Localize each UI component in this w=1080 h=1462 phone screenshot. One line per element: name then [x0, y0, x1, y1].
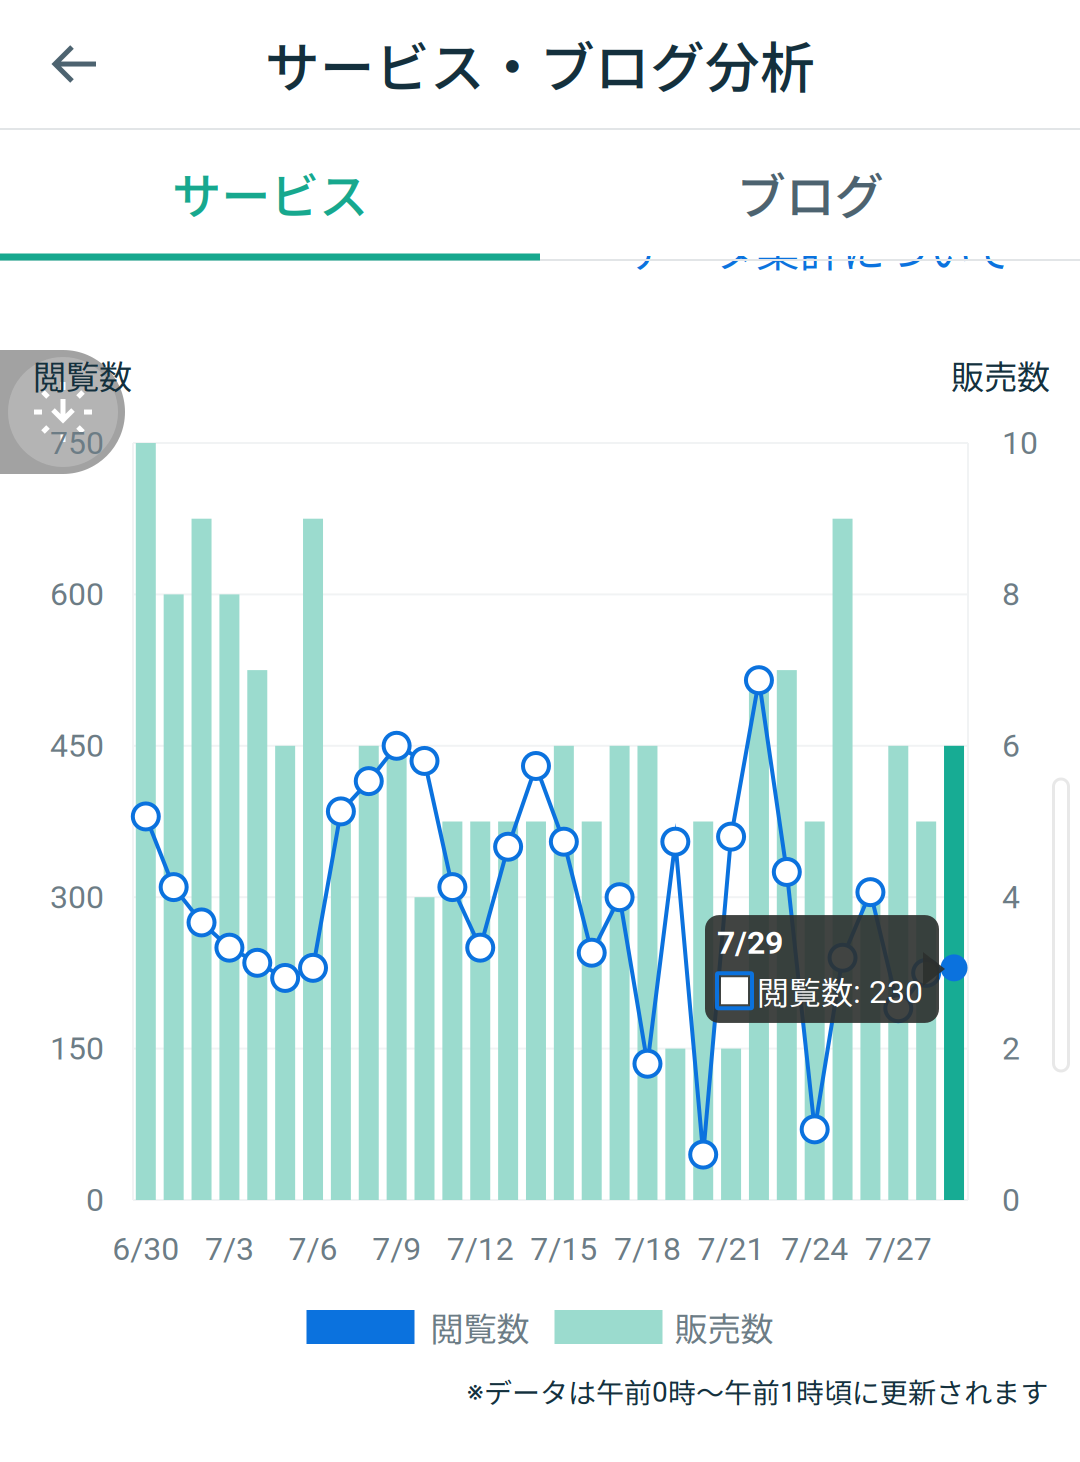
staticText: 7/15	[530, 1230, 597, 1268]
staticText: 7/24	[781, 1230, 848, 1268]
staticText: 2	[1002, 1030, 1020, 1067]
staticText: 10	[1002, 424, 1038, 462]
staticText: 0	[1002, 1181, 1020, 1219]
staticText: 6	[1002, 727, 1020, 764]
staticText: 7/3	[205, 1230, 254, 1268]
staticText: 4	[1002, 878, 1020, 916]
staticText: データ集計について	[627, 218, 1012, 280]
staticText: 300	[50, 878, 104, 916]
staticText: 750	[50, 424, 104, 462]
button[interactable]: ブログ	[540, 130, 1080, 256]
staticText: ※データは午前0時〜午前1時頃に更新されます	[467, 1371, 1048, 1411]
button[interactable]: Back	[22, 10, 130, 118]
staticText: 7/12	[447, 1230, 514, 1268]
staticText: 7/18	[614, 1230, 681, 1268]
staticText: サービス	[172, 157, 368, 229]
staticText: 6/30	[112, 1230, 179, 1268]
staticText: 7/9	[372, 1230, 421, 1268]
staticText: 販売数	[674, 1303, 773, 1351]
staticText: ブログ	[736, 157, 883, 229]
staticText: 0	[86, 1181, 104, 1219]
staticText: 7/27	[865, 1230, 932, 1268]
staticText: 150	[50, 1030, 104, 1067]
staticText: 7/6	[288, 1230, 337, 1268]
staticText: 閲覧数: 230	[757, 968, 923, 1014]
staticText: 閲覧数	[430, 1303, 529, 1351]
staticText: 8	[1002, 576, 1020, 613]
staticText: サービス・ブログ分析	[265, 24, 815, 104]
staticText: 450	[50, 727, 104, 764]
staticText: 閲覧数	[33, 351, 132, 399]
staticText: 600	[50, 576, 104, 613]
button[interactable]: サービス	[0, 130, 540, 256]
staticText: 7/21	[698, 1230, 765, 1268]
staticText: 販売数	[951, 351, 1050, 399]
staticText: 7/29	[717, 924, 783, 962]
